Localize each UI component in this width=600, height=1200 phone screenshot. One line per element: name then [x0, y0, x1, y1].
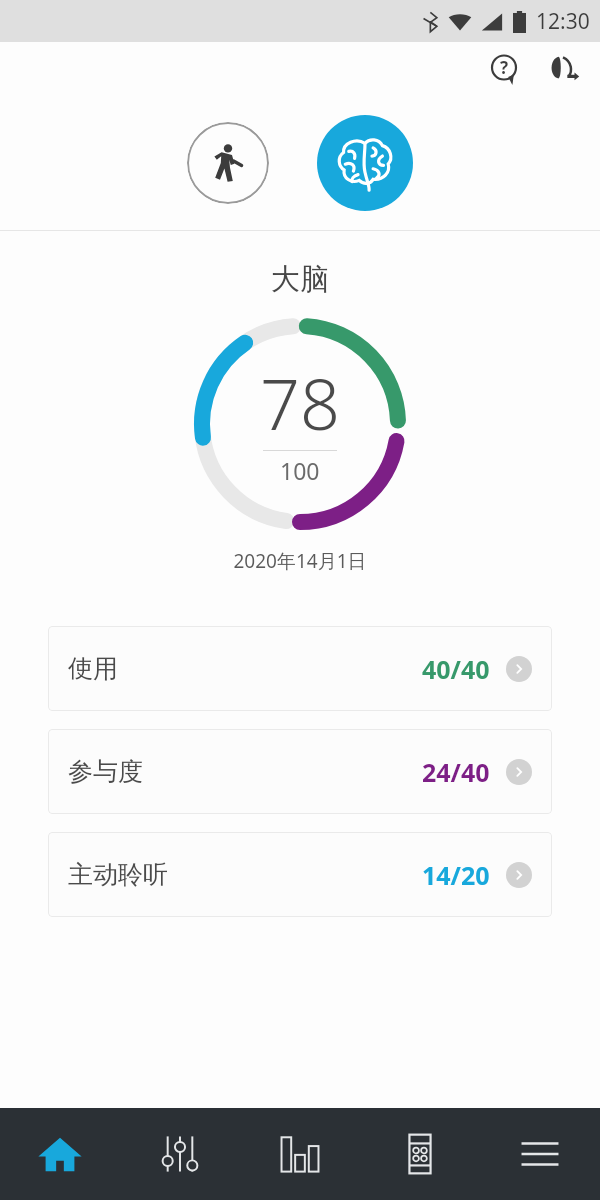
- staticText: 12:30: [536, 7, 590, 36]
- button[interactable]: Help: [482, 47, 526, 91]
- button[interactable]: Remote: [360, 1108, 480, 1200]
- button[interactable]: 使用: [48, 626, 552, 711]
- staticText: 24/40: [422, 755, 490, 789]
- staticText: 大脑: [0, 261, 600, 298]
- button[interactable]: 参与度: [48, 729, 552, 814]
- button[interactable]: Equalizer: [120, 1108, 240, 1200]
- staticText: 参与度: [68, 756, 143, 787]
- button[interactable]: 主动聆听: [48, 832, 552, 917]
- button[interactable]: Hearing aid: [540, 46, 586, 92]
- staticText: 40/40: [422, 652, 490, 686]
- button[interactable]: Brain: [317, 115, 413, 211]
- staticText: 14/20: [422, 858, 490, 892]
- staticText: 主动聆听: [68, 859, 168, 890]
- staticText: 78: [260, 355, 340, 450]
- button[interactable]: Activity: [187, 122, 269, 204]
- staticText: 使用: [68, 653, 118, 684]
- button[interactable]: Menu: [480, 1108, 600, 1200]
- staticText: 100: [280, 455, 320, 486]
- staticText: 2020年14月1日: [0, 548, 600, 574]
- button[interactable]: Statistics: [240, 1108, 360, 1200]
- staticText: ?: [500, 56, 509, 79]
- button[interactable]: Home: [0, 1108, 120, 1200]
